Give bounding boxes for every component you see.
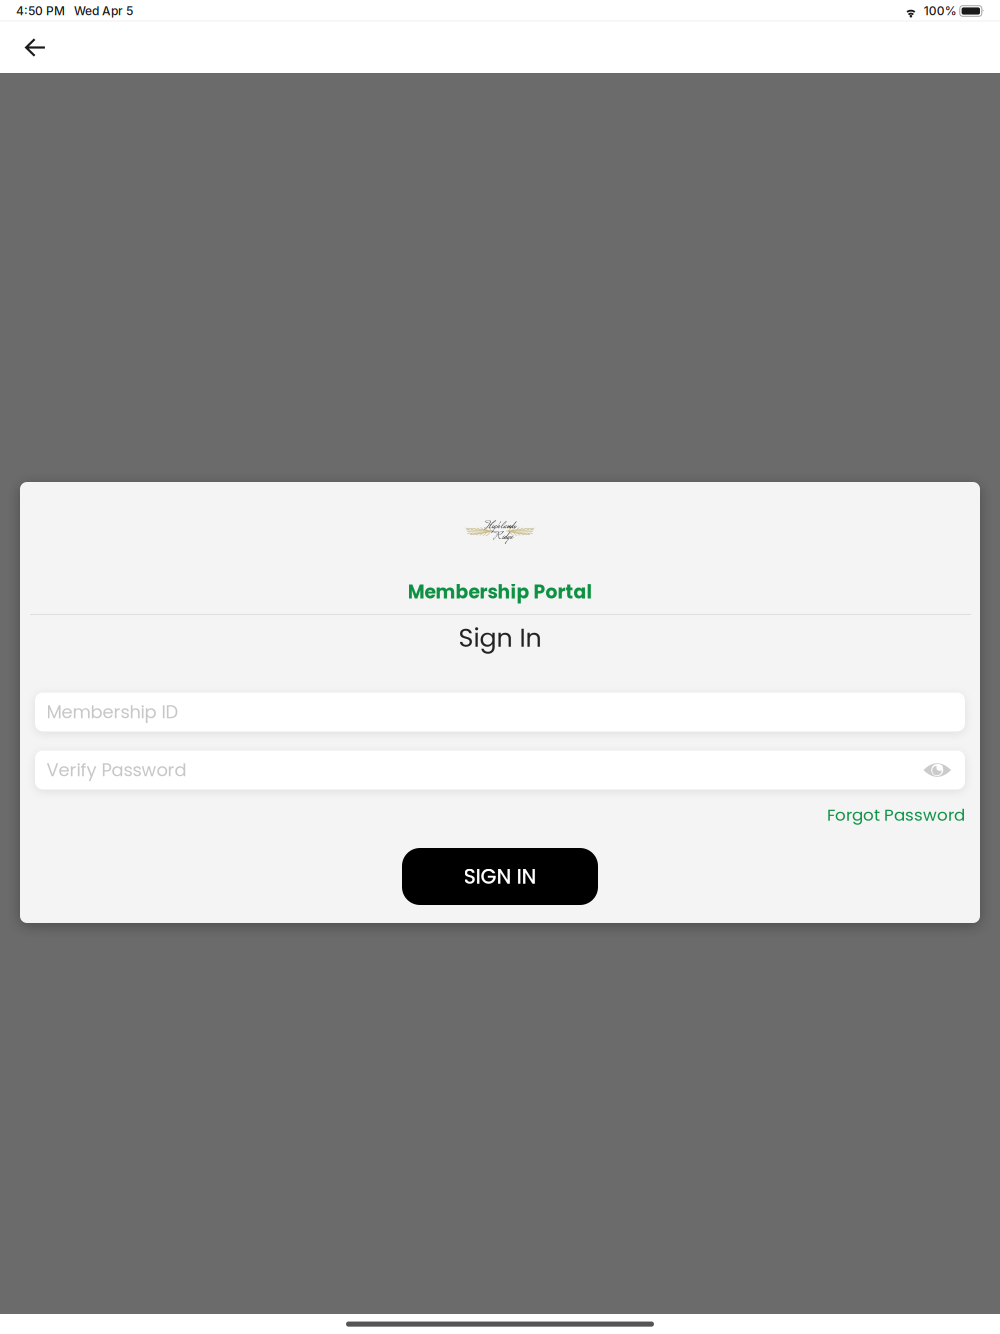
button[interactable]: Back bbox=[6, 22, 64, 73]
staticText: Sign In bbox=[458, 620, 541, 656]
staticText: Wed Apr 5 bbox=[74, 4, 133, 18]
staticText: SIGN IN bbox=[463, 862, 536, 891]
button[interactable]: Show password bbox=[920, 757, 954, 783]
staticText: Membership Portal bbox=[407, 579, 592, 605]
button[interactable]: SIGN IN bbox=[402, 848, 598, 905]
staticText: Forgot Password bbox=[827, 803, 965, 827]
staticText: Membership ID bbox=[46, 699, 178, 724]
staticText: 100% bbox=[924, 4, 957, 18]
staticText: Highlands bbox=[484, 518, 515, 535]
staticText: Ridge bbox=[493, 529, 513, 546]
staticText: Verify Password bbox=[46, 757, 186, 782]
button[interactable]: Forgot Password bbox=[827, 803, 965, 827]
staticText: 4:50 PM bbox=[16, 4, 65, 18]
